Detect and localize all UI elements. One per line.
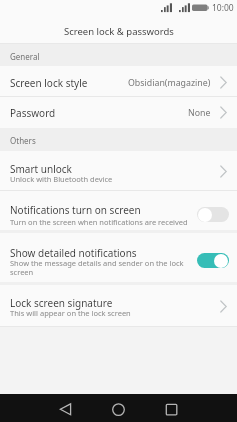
button[interactable]: Screen lock style (0, 66, 237, 97)
staticText: Obsidian(magazine) (128, 77, 211, 89)
staticText: Lock screen signature (10, 296, 113, 310)
staticText: Unlock with Bluetooth device (10, 174, 113, 184)
staticText: 10:00 (212, 2, 234, 14)
button[interactable] (197, 253, 229, 268)
staticText: Notifications turn on screen (10, 203, 141, 217)
button[interactable] (165, 403, 178, 416)
button[interactable]: Show detailed notifications (0, 233, 237, 282)
staticText: screen (10, 267, 34, 277)
staticText: None (188, 107, 211, 119)
button[interactable]: Notifications turn on screen (0, 191, 237, 230)
button[interactable] (112, 403, 125, 416)
staticText: This will appear on the lock screen (10, 308, 131, 318)
button[interactable] (59, 403, 72, 416)
staticText: Screen lock & passwords (64, 25, 174, 38)
staticText: Turn on the screen when notifications ar… (10, 217, 188, 227)
button[interactable]: Password (0, 97, 237, 128)
staticText: Smart unlock (10, 162, 72, 176)
button[interactable]: Smart unlock (0, 151, 237, 191)
staticText: Show the message details and sender on t… (10, 258, 184, 268)
staticText: Password (10, 106, 56, 120)
button[interactable] (197, 207, 229, 222)
button[interactable]: Lock screen signature (0, 285, 237, 327)
staticText: Others (10, 135, 36, 146)
staticText: Show detailed notifications (10, 246, 137, 260)
staticText: General (10, 51, 40, 62)
staticText: Screen lock style (10, 76, 88, 90)
